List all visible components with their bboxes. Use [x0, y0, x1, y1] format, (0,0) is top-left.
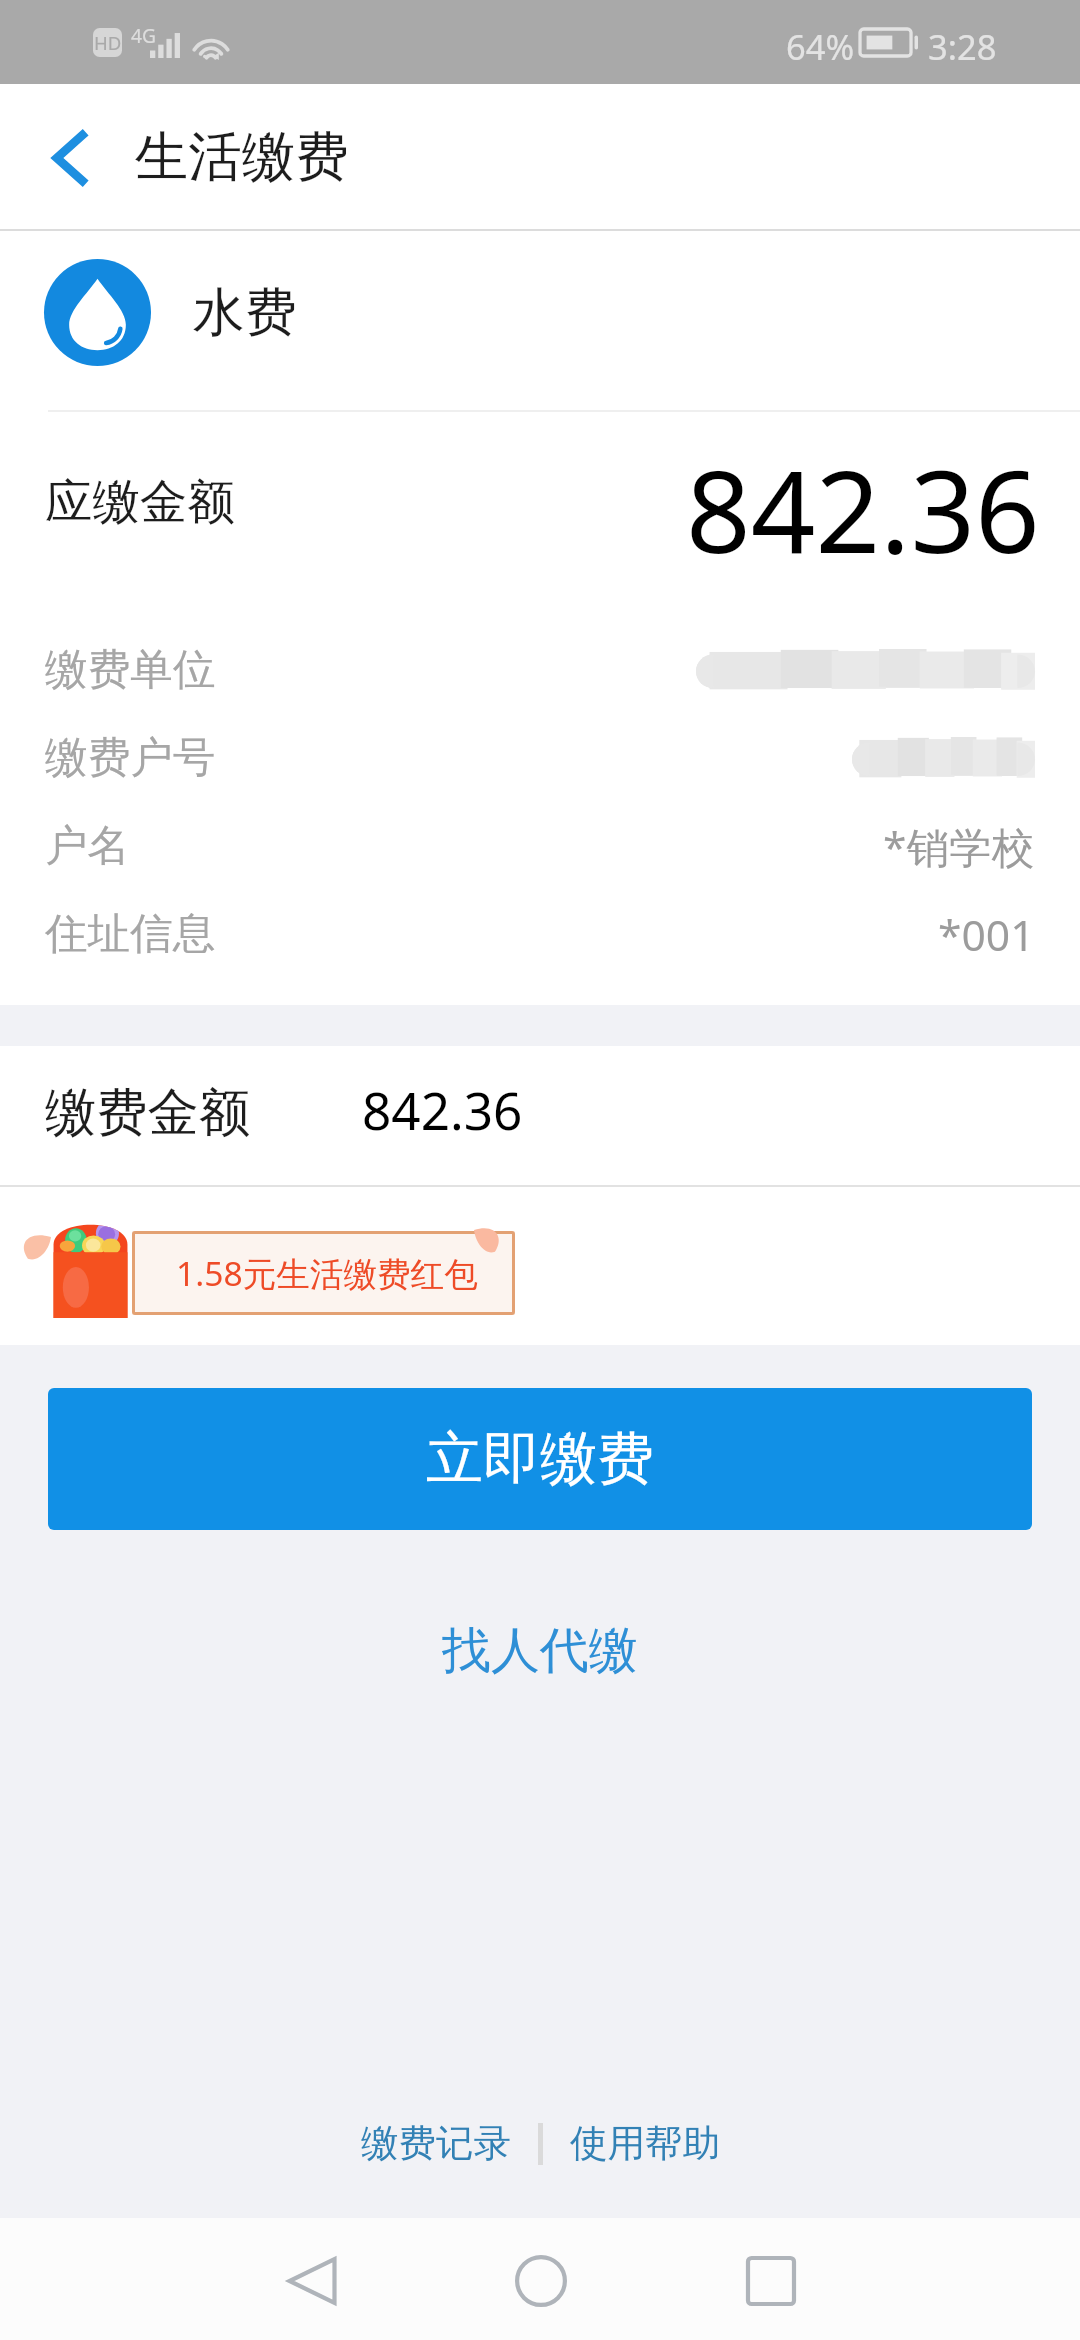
staticText: 应缴金额: [45, 472, 235, 532]
staticText: 842.36: [686, 432, 1040, 586]
button[interactable]: Recent apps: [723, 2233, 819, 2329]
button[interactable]: 缴费记录: [334, 2102, 538, 2185]
button[interactable]: 1.58元生活缴费红包: [0, 1187, 1080, 1345]
staticText: 缴费户号: [45, 731, 216, 785]
staticText: 缴费金额: [45, 1081, 251, 1146]
staticText: HD: [94, 30, 122, 55]
staticText: 3:28: [928, 23, 997, 70]
button[interactable]: Back: [3, 92, 135, 224]
button[interactable]: 水费: [0, 231, 1080, 393]
staticText: 户名: [45, 819, 131, 873]
staticText: 找人代缴: [442, 1620, 638, 1682]
staticText: 842.36: [362, 1075, 523, 1145]
staticText: 4G: [131, 22, 156, 48]
staticText: *销学校: [883, 817, 1035, 875]
staticText: 住址信息: [45, 907, 216, 961]
staticText: 生活缴费: [135, 124, 349, 191]
staticText: 1.58元生活缴费红包: [176, 1250, 478, 1296]
button[interactable]: Back: [264, 2233, 360, 2329]
button[interactable]: 立即缴费: [48, 1388, 1032, 1530]
staticText: 水费: [193, 280, 297, 345]
button[interactable]: 找人代缴: [0, 1602, 1080, 1700]
button[interactable]: 使用帮助: [543, 2102, 747, 2185]
staticText: 立即缴费: [426, 1423, 654, 1495]
staticText: *001: [938, 905, 1035, 963]
staticText: 64%: [786, 23, 855, 70]
button[interactable]: Home: [493, 2233, 589, 2329]
staticText: 缴费单位: [45, 643, 216, 697]
